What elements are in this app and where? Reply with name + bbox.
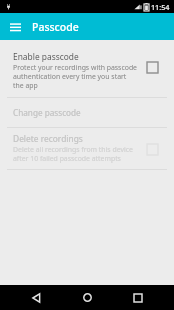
button[interactable]: Recent apps: [123, 285, 153, 310]
staticText: 11:54: [151, 2, 170, 12]
button[interactable]: Back: [21, 285, 51, 310]
staticText: Change passcode: [13, 107, 81, 118]
staticText: Protect your recordings with passcode au…: [13, 63, 137, 90]
button[interactable]: Enable passcode: [0, 45, 174, 97]
button[interactable]: Open navigation menu: [6, 18, 24, 36]
button[interactable]: Home: [72, 285, 102, 310]
button[interactable]: Enable passcode: [143, 58, 161, 76]
staticText: Enable passcode: [13, 51, 79, 62]
button[interactable]: Change passcode: [0, 98, 174, 127]
button[interactable]: Delete recordings: [143, 140, 161, 158]
staticText: Delete all recordings from this device a…: [13, 145, 137, 163]
staticText: Passcode: [32, 20, 79, 34]
staticText: Delete recordings: [13, 133, 83, 144]
button[interactable]: Delete recordings: [0, 128, 174, 169]
